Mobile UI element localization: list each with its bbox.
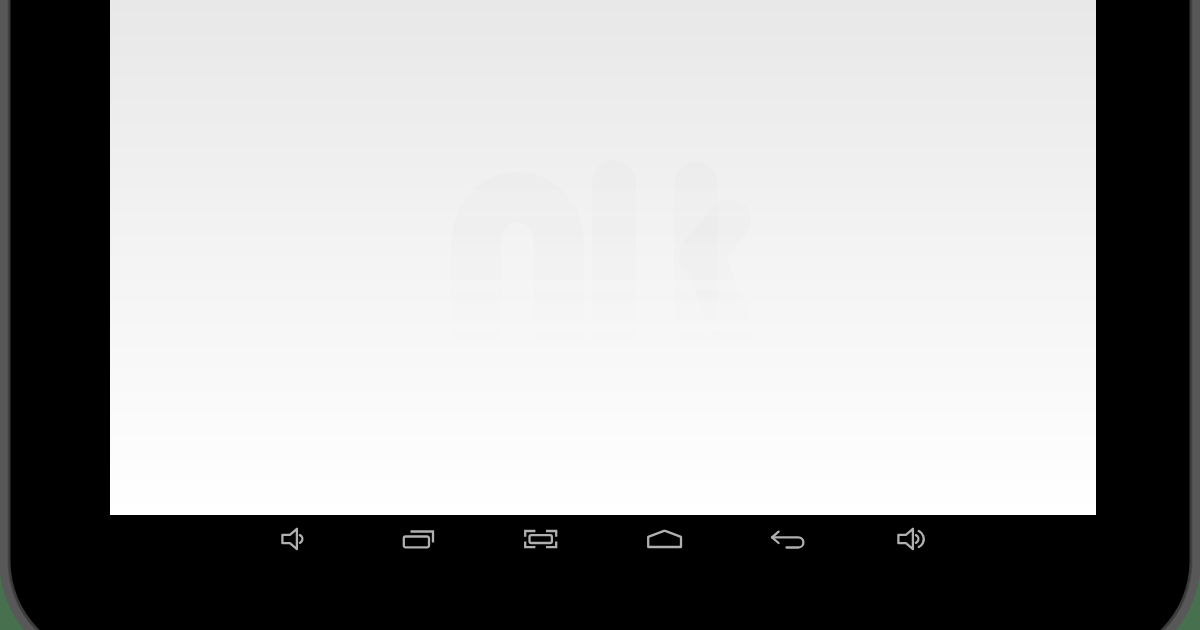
button[interactable]: Screenshot <box>515 514 567 564</box>
button[interactable]: Overview <box>390 517 442 567</box>
button[interactable]: Home <box>639 515 691 565</box>
button[interactable]: Back <box>762 515 814 565</box>
button[interactable]: Volume down <box>264 514 316 564</box>
button[interactable]: Volume up <box>880 514 932 564</box>
